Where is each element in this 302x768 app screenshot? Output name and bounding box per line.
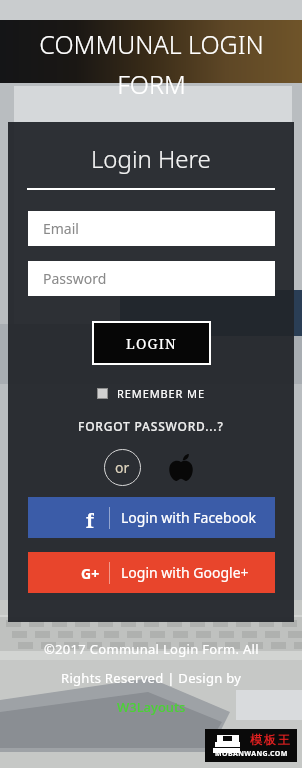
staticText: MOBANWANG.COM	[215, 749, 288, 759]
button[interactable]: G+	[28, 552, 275, 593]
staticText: G+	[81, 564, 100, 583]
staticText: Password	[43, 269, 107, 288]
staticText: 模板王	[249, 732, 291, 747]
button[interactable]: REMEMBER ME	[93, 382, 209, 405]
staticText: Login Here	[91, 142, 211, 175]
staticText: f	[86, 508, 94, 528]
staticText: W3Layouts	[117, 698, 186, 716]
staticText: or	[115, 458, 130, 477]
button[interactable]: Login with Apple	[163, 450, 199, 486]
staticText: Login with Facebook	[121, 508, 257, 527]
button[interactable]: W3Layouts	[117, 698, 186, 716]
staticText: LOGIN	[126, 334, 177, 353]
button[interactable]: FORGOT PASSWORD...?	[70, 415, 232, 437]
staticText: FORM	[117, 67, 186, 101]
button[interactable]: f	[28, 497, 275, 538]
staticText: Rights Reserved | Design by	[61, 669, 242, 687]
button[interactable]: or	[104, 449, 141, 486]
staticText: FORGOT PASSWORD...?	[78, 418, 224, 434]
staticText: COMMUNAL LOGIN	[39, 27, 264, 61]
staticText: Email	[43, 219, 79, 238]
staticText: Login with Google+	[121, 563, 249, 582]
staticText: ©2017 Communal Login Form. All	[44, 640, 259, 658]
button[interactable]: Password	[28, 261, 275, 296]
staticText: REMEMBER ME	[117, 386, 205, 401]
button[interactable]: MobanWang	[205, 729, 297, 762]
button[interactable]: Email	[28, 211, 275, 246]
button[interactable]: LOGIN	[92, 321, 211, 365]
